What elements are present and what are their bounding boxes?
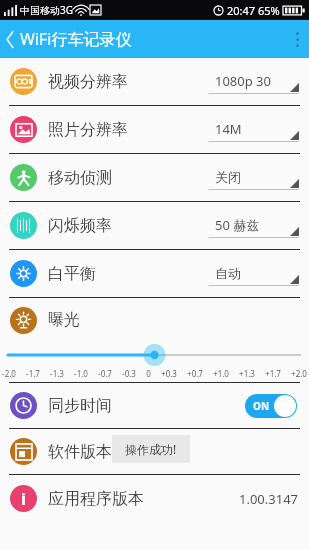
- staticText: 1080p 30: [215, 72, 271, 90]
- button[interactable]: 1080p 30: [209, 69, 299, 94]
- staticText: 同步时间: [48, 396, 112, 416]
- button[interactable]: 50 赫兹: [209, 213, 299, 238]
- staticText: 20:47 65%: [227, 3, 280, 18]
- staticText: 自动: [215, 265, 241, 281]
- button[interactable]: 移动侦测: [0, 154, 309, 201]
- button[interactable]: 14M: [209, 117, 299, 142]
- staticText: 中国移动3G: [20, 3, 73, 17]
- staticText: 软件版本: [48, 442, 112, 462]
- staticText: 关闭: [215, 169, 241, 185]
- staticText: -2.0: [2, 368, 16, 379]
- staticText: -1.3: [50, 368, 64, 379]
- staticText: ON: [253, 399, 270, 413]
- button[interactable]: Sync time toggle, on: [245, 394, 297, 418]
- staticText: -0.3: [122, 368, 136, 379]
- button[interactable]: 曝光: [0, 298, 309, 342]
- staticText: -1.7: [26, 368, 40, 379]
- staticText: +2.0: [291, 368, 307, 379]
- staticText: 移动侦测: [48, 168, 112, 188]
- button[interactable]: 闪烁频率: [0, 202, 309, 249]
- staticText: 闪烁频率: [48, 216, 112, 236]
- button[interactable]: i: [0, 475, 309, 522]
- button[interactable]: 照片分辨率: [0, 106, 309, 153]
- staticText: +0.7: [187, 368, 203, 379]
- staticText: -1.0: [74, 368, 88, 379]
- staticText: +0.3: [161, 368, 177, 379]
- staticText: 0: [146, 368, 151, 379]
- staticText: 操作成功!: [125, 441, 177, 457]
- button[interactable]: 关闭: [209, 165, 299, 190]
- staticText: +1.0: [213, 368, 229, 379]
- staticText: 白平衡: [48, 264, 96, 284]
- staticText: 照片分辨率: [48, 120, 128, 140]
- button[interactable]: 自动: [209, 261, 299, 286]
- staticText: 应用程序版本: [48, 489, 144, 509]
- button[interactable]: 同步时间: [0, 383, 309, 428]
- staticText: +1.7: [265, 368, 281, 379]
- button[interactable]: 软件版本: [0, 429, 309, 474]
- button[interactable]: 视频分辨率: [0, 58, 309, 105]
- staticText: i: [21, 487, 27, 510]
- button[interactable]: 白平衡: [0, 250, 309, 297]
- staticText: 14M: [215, 120, 242, 138]
- staticText: +1.3: [239, 368, 255, 379]
- button[interactable]: Back: [0, 24, 136, 54]
- staticText: WiFi行车记录仪: [20, 28, 132, 50]
- staticText: 视频分辨率: [48, 72, 128, 92]
- staticText: 1.00.3147: [239, 490, 299, 508]
- staticText: 曝光: [48, 310, 80, 330]
- staticText: 50 赫兹: [215, 216, 260, 234]
- button[interactable]: More options: [286, 24, 309, 55]
- staticText: -0.7: [98, 368, 112, 379]
